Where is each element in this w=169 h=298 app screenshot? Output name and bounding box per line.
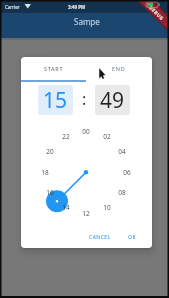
staticText: END: [112, 65, 126, 72]
staticText: Carrier: [5, 4, 20, 10]
staticText: 00: [82, 127, 90, 136]
staticText: 15: [43, 86, 68, 115]
staticText: CANCEL: [89, 234, 111, 241]
button[interactable]: OK: [123, 230, 141, 244]
button[interactable]: 15: [38, 85, 73, 115]
staticText: 3:49 PM: [68, 4, 86, 10]
staticText: DEBUG: [148, 4, 165, 21]
button[interactable]: 49: [95, 85, 130, 115]
button[interactable]: END: [86, 57, 151, 80]
staticText: Sampe: [74, 16, 100, 27]
staticText: :: [82, 88, 87, 110]
staticText: 04: [118, 147, 126, 156]
staticText: 08: [118, 188, 126, 197]
staticText: 18: [41, 168, 49, 177]
staticText: 02: [103, 132, 111, 141]
button[interactable]: START: [21, 57, 86, 80]
button[interactable]: CANCEL: [85, 230, 115, 244]
staticText: 20: [46, 147, 54, 156]
staticText: 22: [62, 132, 70, 141]
staticText: START: [44, 65, 64, 72]
staticText: OK: [128, 234, 137, 241]
staticText: 10: [103, 203, 111, 212]
staticText: 06: [123, 168, 131, 177]
staticText: 12: [82, 209, 90, 218]
staticText: 14: [62, 203, 70, 212]
staticText: 49: [100, 86, 125, 115]
button[interactable]: [0, 13, 169, 38]
staticText: 16: [46, 188, 54, 197]
